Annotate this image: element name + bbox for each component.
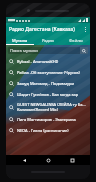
button[interactable]: Файлы: [62, 35, 90, 45]
button[interactable]: Замуд Магомед - Подожмури: [6, 78, 90, 89]
staticText: Файлы: [69, 38, 83, 43]
staticText: Лига Магтимиров - Экатерина: [17, 117, 76, 122]
button[interactable]: Rybaal - Анатолий(HI): [6, 56, 90, 67]
button[interactable]: Recents: [66, 155, 78, 165]
staticText: Поиск музыки: [10, 48, 80, 53]
button[interactable]: Home: [42, 155, 54, 165]
button[interactable]: More options: [80, 23, 90, 35]
button[interactable]: Search: [80, 47, 88, 54]
staticText: Калимин(Record Mix): [17, 107, 58, 112]
staticText: Замуд Магомед - Подожмури: [17, 81, 74, 86]
staticText: NEDA - Гиела (расписание): [17, 128, 69, 133]
staticText: GUEST NEWGALINSA (ЛЕЙЛА ту Байкал - ка: [17, 102, 87, 107]
button[interactable]: Музыка: [6, 35, 34, 45]
staticText: Музыка: [12, 38, 28, 43]
button[interactable]: GUEST NEWGALINSA (ЛЕЙЛА ту Байкал - ка: [6, 100, 90, 114]
button[interactable]: Радио: [34, 35, 62, 45]
staticText: Шадит Гусейнов - Баз когда зар: [17, 92, 79, 97]
button[interactable]: NEDA - Гиела (расписание): [6, 125, 90, 136]
staticText: Рабиа -Об выступление (Чрусов): [17, 70, 80, 75]
staticText: Rybaal - Анатолий(HI): [17, 59, 59, 64]
button[interactable]: Шадит Гусейнов - Баз когда зар: [6, 89, 90, 100]
staticText: Радио Дагестана (Кавказа): [9, 26, 75, 33]
button[interactable]: Back: [18, 155, 30, 165]
staticText: Радио: [42, 38, 55, 43]
button[interactable]: Рабиа -Об выступление (Чрусов): [6, 67, 90, 78]
button[interactable]: Лига Магтимиров - Экатерина: [6, 114, 90, 125]
button[interactable]: Поиск музыки: [8, 47, 88, 54]
